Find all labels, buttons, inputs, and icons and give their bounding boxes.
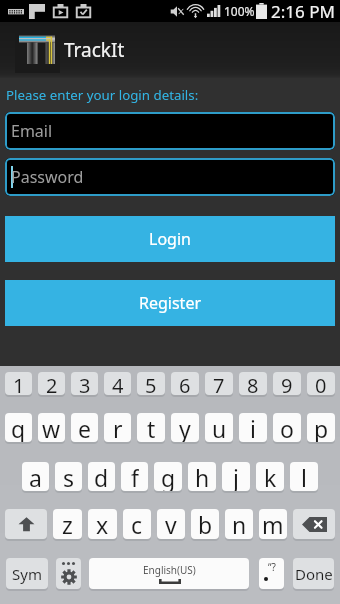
button[interactable]: l — [290, 462, 318, 491]
staticText: m — [262, 509, 284, 539]
button[interactable]: u — [205, 413, 233, 442]
button[interactable]: h — [188, 462, 216, 491]
button[interactable]: ʺ? — [259, 558, 284, 589]
button[interactable]: m — [259, 509, 287, 539]
staticText: 7 — [213, 372, 225, 395]
staticText: 2:16 PM — [271, 0, 335, 22]
button[interactable]: n — [225, 509, 253, 539]
other: Backspace — [293, 509, 335, 539]
staticText: 3 — [79, 372, 91, 395]
staticText: 1 — [13, 372, 25, 395]
staticText: Sym — [12, 564, 42, 584]
staticText: TrackIt — [64, 37, 125, 63]
button[interactable]: 3 — [71, 372, 98, 395]
staticText: w — [42, 413, 61, 442]
button[interactable]: z — [53, 509, 82, 539]
button[interactable]: q — [5, 413, 32, 442]
button[interactable]: 1 — [5, 372, 32, 395]
staticText: v — [165, 509, 177, 539]
staticText: Email — [11, 120, 53, 142]
button[interactable]: Login — [5, 216, 335, 262]
staticText: d — [94, 462, 109, 491]
button[interactable]: s — [55, 462, 82, 491]
button[interactable]: t — [137, 413, 165, 442]
button[interactable]: g — [154, 462, 182, 491]
staticText: 100% — [224, 3, 255, 19]
staticText: 9 — [281, 372, 293, 395]
staticText: a — [29, 462, 42, 491]
button[interactable]: Done — [293, 558, 334, 589]
button[interactable]: e — [71, 413, 98, 442]
button[interactable]: Sym — [6, 558, 48, 589]
button[interactable]: b — [191, 509, 219, 539]
button[interactable]: w — [38, 413, 65, 442]
staticText: 2 — [46, 372, 58, 395]
staticText: c — [131, 509, 143, 539]
staticText: English(US) — [143, 563, 196, 577]
button[interactable]: 7 — [205, 372, 233, 395]
button[interactable] — [56, 558, 81, 589]
button[interactable]: r — [104, 413, 131, 442]
button[interactable]: 6 — [171, 372, 199, 395]
button[interactable]: x — [88, 509, 117, 539]
staticText: j — [233, 462, 239, 491]
staticText: f — [131, 462, 139, 491]
button[interactable]: 4 — [104, 372, 131, 395]
staticText: 6 — [179, 372, 191, 395]
button[interactable] — [5, 509, 47, 539]
staticText: 4 — [112, 372, 124, 395]
button[interactable]: Email — [5, 112, 335, 150]
button[interactable]: Password — [5, 158, 335, 196]
staticText: o — [280, 413, 294, 442]
staticText: u — [212, 413, 227, 442]
staticText: p — [314, 413, 329, 442]
button[interactable]: d — [88, 462, 115, 491]
staticText: 5 — [145, 372, 157, 395]
staticText: l — [301, 462, 307, 491]
staticText: q — [11, 413, 26, 442]
button[interactable]: y — [171, 413, 199, 442]
staticText: x — [96, 509, 109, 539]
staticText: e — [78, 413, 91, 442]
button[interactable]: k — [256, 462, 284, 491]
button[interactable]: 5 — [137, 372, 165, 395]
staticText: g — [161, 462, 176, 491]
button[interactable]: c — [123, 509, 151, 539]
button[interactable]: o — [273, 413, 301, 442]
staticText: z — [62, 509, 73, 539]
other: Input settings — [56, 558, 81, 589]
staticText: ʺ? — [268, 560, 276, 574]
button[interactable]: 8 — [239, 372, 267, 395]
staticText: s — [63, 462, 75, 491]
staticText: Password — [11, 166, 84, 188]
staticText: b — [198, 509, 213, 539]
button[interactable]: Register — [5, 280, 335, 326]
button[interactable]: p — [307, 413, 335, 442]
staticText: n — [232, 509, 247, 539]
button[interactable]: 0 — [307, 372, 335, 395]
staticText: 8 — [247, 372, 259, 395]
staticText: 0 — [315, 372, 327, 395]
staticText: t — [147, 413, 156, 442]
staticText: h — [195, 462, 210, 491]
button[interactable]: j — [222, 462, 250, 491]
staticText: Done — [295, 564, 333, 584]
button[interactable]: 9 — [273, 372, 301, 395]
staticText: r — [113, 413, 123, 442]
staticText: Please enter your login details: — [6, 86, 340, 104]
button[interactable]: i — [239, 413, 267, 442]
staticText: Register — [139, 292, 202, 314]
staticText: k — [264, 462, 277, 491]
button[interactable]: English(US) — [89, 558, 249, 589]
button[interactable]: a — [22, 462, 49, 491]
button[interactable]: 2 — [38, 372, 65, 395]
other: Shift — [5, 509, 47, 539]
button[interactable]: v — [157, 509, 185, 539]
staticText: Login — [149, 228, 191, 250]
staticText: i — [250, 413, 256, 442]
button[interactable] — [293, 509, 335, 539]
staticText: y — [179, 413, 191, 442]
button[interactable]: f — [121, 462, 148, 491]
